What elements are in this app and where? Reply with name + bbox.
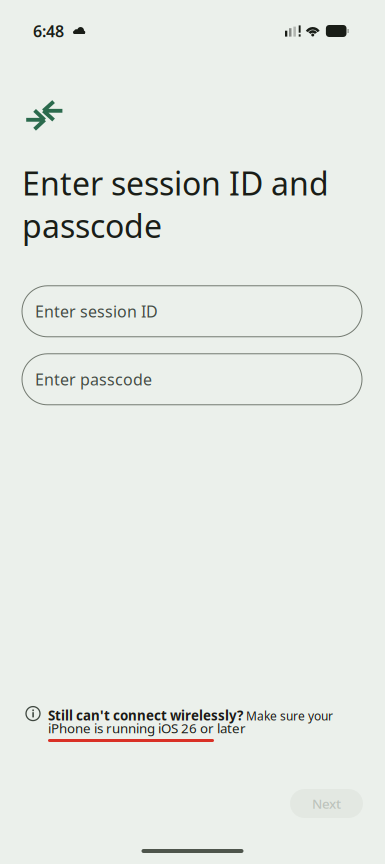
staticText: iPhone is running iOS 26 or later	[48, 719, 246, 737]
staticText: Next	[312, 795, 341, 812]
staticText: Enter session ID and passcode	[22, 162, 329, 247]
button[interactable]: Next	[290, 789, 363, 818]
staticText: Still can't connect wirelessly? Make sur…	[48, 707, 333, 724]
staticText: Enter passcode	[35, 369, 152, 390]
button[interactable]: Enter passcode	[22, 354, 362, 405]
staticText: Enter session ID	[35, 301, 158, 322]
staticText: 6:48	[33, 20, 64, 42]
button[interactable]: Enter session ID	[22, 286, 362, 337]
